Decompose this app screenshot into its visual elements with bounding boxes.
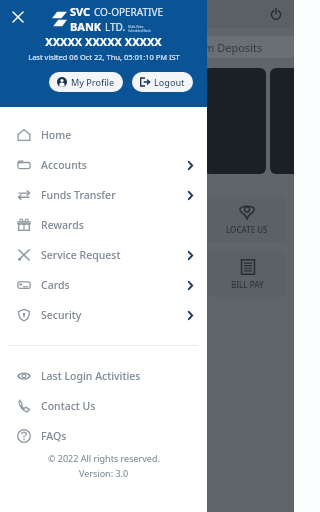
staticText: Contact Us bbox=[41, 399, 96, 413]
staticText: SVC bbox=[70, 4, 91, 19]
staticText: © 2022 All rights reserved. bbox=[48, 452, 160, 464]
staticText: XXXXX XXXXX XXXXX bbox=[45, 34, 162, 49]
button[interactable]: Accounts bbox=[0, 150, 207, 180]
button[interactable]: Last Login Activities bbox=[0, 361, 207, 391]
button[interactable]: Cards bbox=[0, 270, 207, 300]
button[interactable]: Logout bbox=[132, 72, 193, 92]
staticText: LOCATE US bbox=[226, 224, 268, 235]
button[interactable]: m Deposits bbox=[178, 36, 294, 58]
button[interactable]: Home bbox=[0, 120, 207, 150]
staticText: Funds Transfer bbox=[41, 188, 116, 202]
staticText: Rewards bbox=[41, 218, 84, 232]
staticText: Cards bbox=[41, 278, 70, 292]
button[interactable]: LOCATE US bbox=[207, 196, 287, 242]
staticText: Service Request bbox=[41, 248, 121, 262]
staticText: Version: 3.0 bbox=[79, 467, 129, 479]
button[interactable] bbox=[270, 68, 320, 174]
button[interactable]: Security bbox=[0, 300, 207, 330]
button[interactable]: Service Request bbox=[0, 240, 207, 270]
staticText: Accounts bbox=[41, 158, 87, 172]
staticText: BILL PAY bbox=[231, 279, 264, 290]
staticText: FAQs bbox=[41, 429, 67, 443]
button[interactable] bbox=[204, 68, 266, 174]
button[interactable]: BILL PAY bbox=[207, 251, 287, 297]
staticText: BANK bbox=[70, 19, 102, 34]
staticText: CO-OPERATIVE bbox=[94, 5, 163, 19]
button[interactable]: Contact Us bbox=[0, 391, 207, 421]
staticText: Home bbox=[41, 128, 72, 142]
staticText: Last Login Activities bbox=[41, 369, 141, 383]
button[interactable]: Funds Transfer bbox=[0, 180, 207, 210]
staticText: Logout bbox=[154, 76, 185, 88]
button[interactable]: My Profile bbox=[49, 72, 123, 92]
button[interactable]: Rewards bbox=[0, 210, 207, 240]
staticText: Multi-State Scheduled Bank bbox=[128, 25, 151, 33]
button[interactable]: FAQs bbox=[0, 421, 207, 451]
staticText: Security bbox=[41, 308, 82, 322]
staticText: LTD. bbox=[105, 20, 126, 34]
staticText: m Deposits bbox=[204, 40, 263, 55]
staticText: My Profile bbox=[71, 76, 115, 88]
staticText: Last visited 06 Oct 22, Thu, 05:01:10 PM… bbox=[28, 52, 180, 62]
button[interactable]: Close drawer bbox=[7, 6, 29, 28]
button[interactable]: Power / Logout bbox=[267, 5, 285, 23]
